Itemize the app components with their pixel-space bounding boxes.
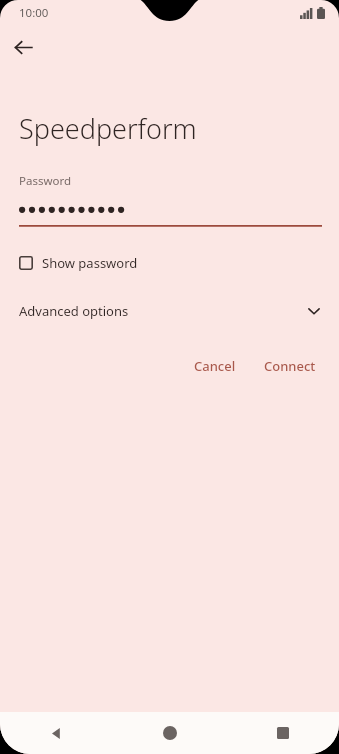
staticText: Password [19,173,72,189]
staticText: Cancel [194,357,236,375]
button[interactable]: Home [113,712,226,754]
button[interactable]: Advanced options [0,296,339,326]
staticText: Speedperform [19,110,197,147]
button[interactable]: Cancel [184,351,246,381]
staticText: Connect [264,357,316,375]
button[interactable]: Password field [19,201,322,227]
button[interactable]: Back [0,712,113,754]
button[interactable]: Connect [254,351,326,381]
button[interactable]: Back [7,31,39,63]
staticText: Show password [42,254,138,272]
staticText: 10:00 [19,5,49,21]
button[interactable]: Show password [19,249,138,277]
button[interactable]: Recent apps [226,712,339,754]
staticText: Advanced options [19,302,129,320]
